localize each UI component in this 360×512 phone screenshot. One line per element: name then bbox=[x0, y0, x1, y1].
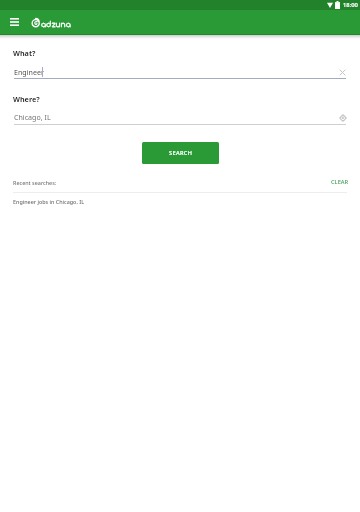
button[interactable]: CLEAR bbox=[327, 175, 353, 189]
staticText: Chicago, IL bbox=[14, 112, 51, 122]
staticText: 18:00 bbox=[343, 1, 358, 9]
staticText: Engineer bbox=[14, 67, 44, 77]
button[interactable]: SEARCH bbox=[142, 142, 219, 164]
staticText: adzuna bbox=[41, 20, 71, 28]
staticText: SEARCH bbox=[169, 149, 193, 157]
button[interactable]: Engineer jobs in Chicago, IL bbox=[0, 194, 360, 208]
button[interactable]: Clear search term bbox=[335, 65, 350, 80]
staticText: Engineer jobs in Chicago, IL bbox=[13, 198, 85, 205]
staticText: Where? bbox=[13, 94, 40, 104]
button[interactable]: Use current location bbox=[335, 110, 350, 125]
button[interactable]: Open navigation menu bbox=[4, 13, 25, 30]
staticText: CLEAR bbox=[331, 178, 349, 186]
staticText: Recent searches: bbox=[13, 179, 57, 186]
staticText: What? bbox=[13, 48, 36, 58]
